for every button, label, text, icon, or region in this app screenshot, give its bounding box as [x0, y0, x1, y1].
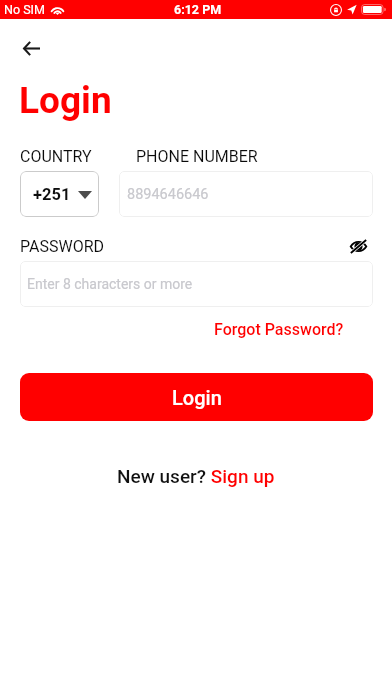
- staticText: New user? Sign up: [117, 465, 275, 487]
- button[interactable]: 8894646646: [119, 171, 373, 217]
- staticText: 8894646646: [127, 186, 209, 203]
- staticText: COUNTRY: [20, 147, 92, 166]
- button[interactable]: +251: [20, 171, 99, 217]
- button[interactable]: Back: [11, 28, 51, 68]
- button[interactable]: Forgot Password?: [214, 320, 344, 339]
- staticText: +251: [33, 185, 71, 204]
- staticText: Login: [19, 79, 112, 122]
- button[interactable]: Login: [20, 373, 373, 421]
- staticText: PASSWORD: [20, 237, 105, 256]
- button[interactable]: Show password: [345, 233, 372, 259]
- staticText: PHONE NUMBER: [136, 147, 258, 166]
- staticText: Login: [172, 386, 222, 409]
- staticText: 6:12 PM: [174, 2, 222, 17]
- staticText: Enter 8 characters or more: [27, 276, 193, 292]
- button[interactable]: New user? Sign up: [117, 465, 275, 487]
- button[interactable]: Enter 8 characters or more: [20, 261, 373, 307]
- staticText: No SIM: [4, 2, 45, 17]
- staticText: Forgot Password?: [214, 320, 344, 339]
